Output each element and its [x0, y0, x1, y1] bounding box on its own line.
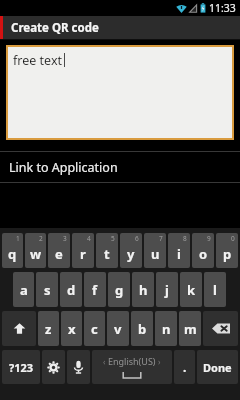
- button[interactable]: h: [132, 272, 154, 307]
- button[interactable]: 5: [96, 233, 118, 268]
- button[interactable]: s: [36, 272, 58, 307]
- button[interactable]: free text: [8, 47, 232, 138]
- staticText: ›: [158, 356, 161, 367]
- staticText: p: [223, 245, 232, 263]
- staticText: 11:33: [209, 1, 236, 15]
- button[interactable]: Input settings: [42, 350, 65, 384]
- staticText: s: [44, 281, 51, 299]
- staticText: 2: [39, 234, 43, 243]
- staticText: 5: [111, 234, 115, 243]
- staticText: y: [127, 245, 135, 263]
- staticText: d: [67, 281, 76, 299]
- button[interactable]: 9: [192, 233, 214, 268]
- staticText: v: [114, 320, 122, 338]
- staticText: c: [91, 320, 98, 338]
- button[interactable]: 4: [72, 233, 94, 268]
- button[interactable]: k: [180, 272, 202, 307]
- button[interactable]: 2: [25, 233, 46, 268]
- staticText: ?123: [9, 360, 34, 375]
- staticText: l: [213, 281, 217, 299]
- button[interactable]: 7: [144, 233, 166, 268]
- staticText: ‹: [103, 356, 106, 367]
- staticText: h: [139, 281, 148, 299]
- staticText: Done: [203, 360, 232, 375]
- staticText: b: [138, 320, 147, 338]
- button[interactable]: l: [204, 272, 226, 307]
- staticText: e: [55, 245, 63, 263]
- staticText: 1: [16, 234, 20, 243]
- button[interactable]: g: [108, 272, 130, 307]
- staticText: .: [183, 359, 187, 375]
- staticText: t: [104, 245, 110, 263]
- button[interactable]: a: [13, 272, 34, 307]
- button[interactable]: Done: [197, 350, 238, 384]
- staticText: f: [92, 281, 98, 299]
- staticText: English(US): [108, 355, 156, 367]
- staticText: k: [187, 281, 196, 299]
- button[interactable]: 3: [48, 233, 70, 268]
- button[interactable]: j: [156, 272, 178, 307]
- button[interactable]: x: [61, 311, 82, 346]
- staticText: 4: [87, 234, 91, 243]
- button[interactable]: d: [60, 272, 82, 307]
- staticText: x: [68, 320, 76, 338]
- staticText: i: [177, 245, 181, 263]
- button[interactable]: Voice input: [67, 350, 90, 384]
- staticText: o: [199, 245, 208, 263]
- button[interactable]: .: [174, 350, 195, 384]
- button[interactable]: 6: [120, 233, 142, 268]
- staticText: w: [30, 245, 42, 263]
- staticText: 9: [207, 234, 211, 243]
- button[interactable]: m: [179, 311, 201, 346]
- button[interactable]: Space: [92, 350, 172, 384]
- staticText: free text: [13, 52, 63, 69]
- staticText: 8: [183, 234, 187, 243]
- staticText: Link to Application: [9, 159, 118, 176]
- button[interactable]: Link to Application: [0, 152, 240, 182]
- button[interactable]: z: [38, 311, 59, 346]
- staticText: 0: [231, 234, 235, 243]
- staticText: Create QR code: [11, 20, 99, 36]
- button[interactable]: Create QR code: [0, 16, 240, 40]
- button[interactable]: 1: [2, 233, 23, 268]
- button[interactable]: n: [155, 311, 177, 346]
- staticText: z: [45, 320, 52, 338]
- staticText: 3: [63, 234, 67, 243]
- staticText: 6: [135, 234, 139, 243]
- button[interactable]: 8: [168, 233, 190, 268]
- staticText: q: [8, 245, 17, 263]
- button[interactable]: f: [84, 272, 106, 307]
- staticText: m: [184, 320, 197, 338]
- staticText: r: [80, 245, 86, 263]
- button[interactable]: b: [131, 311, 153, 346]
- button[interactable]: Shift: [2, 311, 36, 346]
- staticText: a: [20, 281, 28, 299]
- staticText: g: [115, 281, 124, 299]
- button[interactable]: v: [107, 311, 129, 346]
- staticText: n: [162, 320, 171, 338]
- button[interactable]: c: [84, 311, 105, 346]
- staticText: u: [151, 245, 160, 263]
- button[interactable]: Backspace: [203, 311, 238, 346]
- button[interactable]: ?123: [2, 350, 40, 384]
- staticText: 7: [159, 234, 163, 243]
- button[interactable]: 0: [216, 233, 238, 268]
- staticText: j: [165, 281, 169, 299]
